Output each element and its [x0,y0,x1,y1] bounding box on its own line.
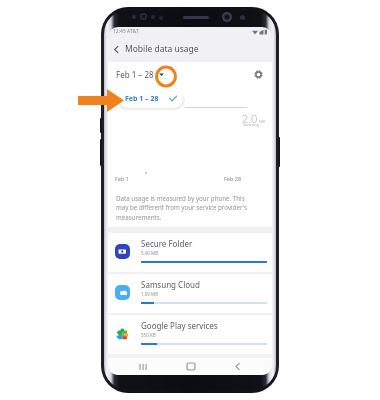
staticText: 2.0 [242,111,258,126]
staticText: Feb 1 – 28 [125,94,159,104]
button[interactable]: Home [182,358,199,375]
button[interactable]: Google Play services [108,315,272,354]
staticText: Data usage is measured by your phone. Th… [116,194,258,222]
staticText: 5.40 MB [141,250,159,256]
staticText: 12:45 AT&T [113,28,139,35]
staticText: Samsung Cloud [141,279,200,290]
staticText: Secure Folder [141,238,193,249]
button[interactable]: Secure Folder [108,233,272,272]
staticText: 550 KB [141,332,156,338]
staticText: Feb 1 – 28 [116,69,154,80]
button[interactable]: Settings [251,67,265,81]
button[interactable]: Recent apps [134,358,151,375]
staticText: Google Play services [141,320,218,331]
staticText: Mobile data usage [125,43,199,55]
button[interactable]: Feb 1 – 28 [119,89,183,108]
staticText: GB [259,119,265,125]
button[interactable]: Back [108,36,125,62]
staticText: 1.09 MB [141,291,159,297]
button[interactable]: Feb 1 – 28 [116,69,164,80]
staticText: Feb 28 [224,175,242,182]
button[interactable]: Samsung Cloud [108,274,272,313]
button[interactable]: Back [229,358,246,375]
staticText: warning [243,122,260,128]
staticText: Feb 1 [115,175,129,182]
